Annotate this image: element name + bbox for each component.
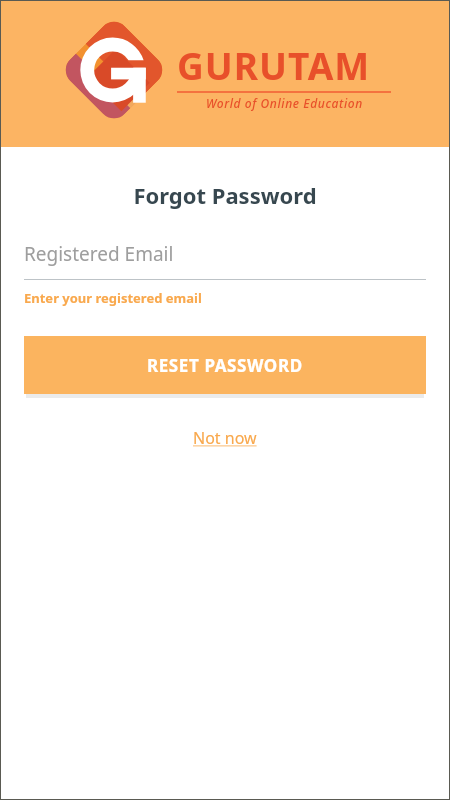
- staticText: Not now: [193, 427, 257, 449]
- staticText: RESET PASSWORD: [147, 354, 303, 377]
- staticText: Registered Email: [24, 241, 174, 267]
- staticText: Forgot Password: [133, 180, 317, 210]
- button[interactable]: RESET PASSWORD: [24, 336, 426, 394]
- staticText: Enter your registered email: [24, 289, 202, 307]
- staticText: World of Online Education: [206, 95, 363, 111]
- button[interactable]: Registered Email: [24, 241, 426, 280]
- button[interactable]: Not now: [181, 423, 269, 453]
- staticText: GURUTAM: [177, 40, 371, 90]
